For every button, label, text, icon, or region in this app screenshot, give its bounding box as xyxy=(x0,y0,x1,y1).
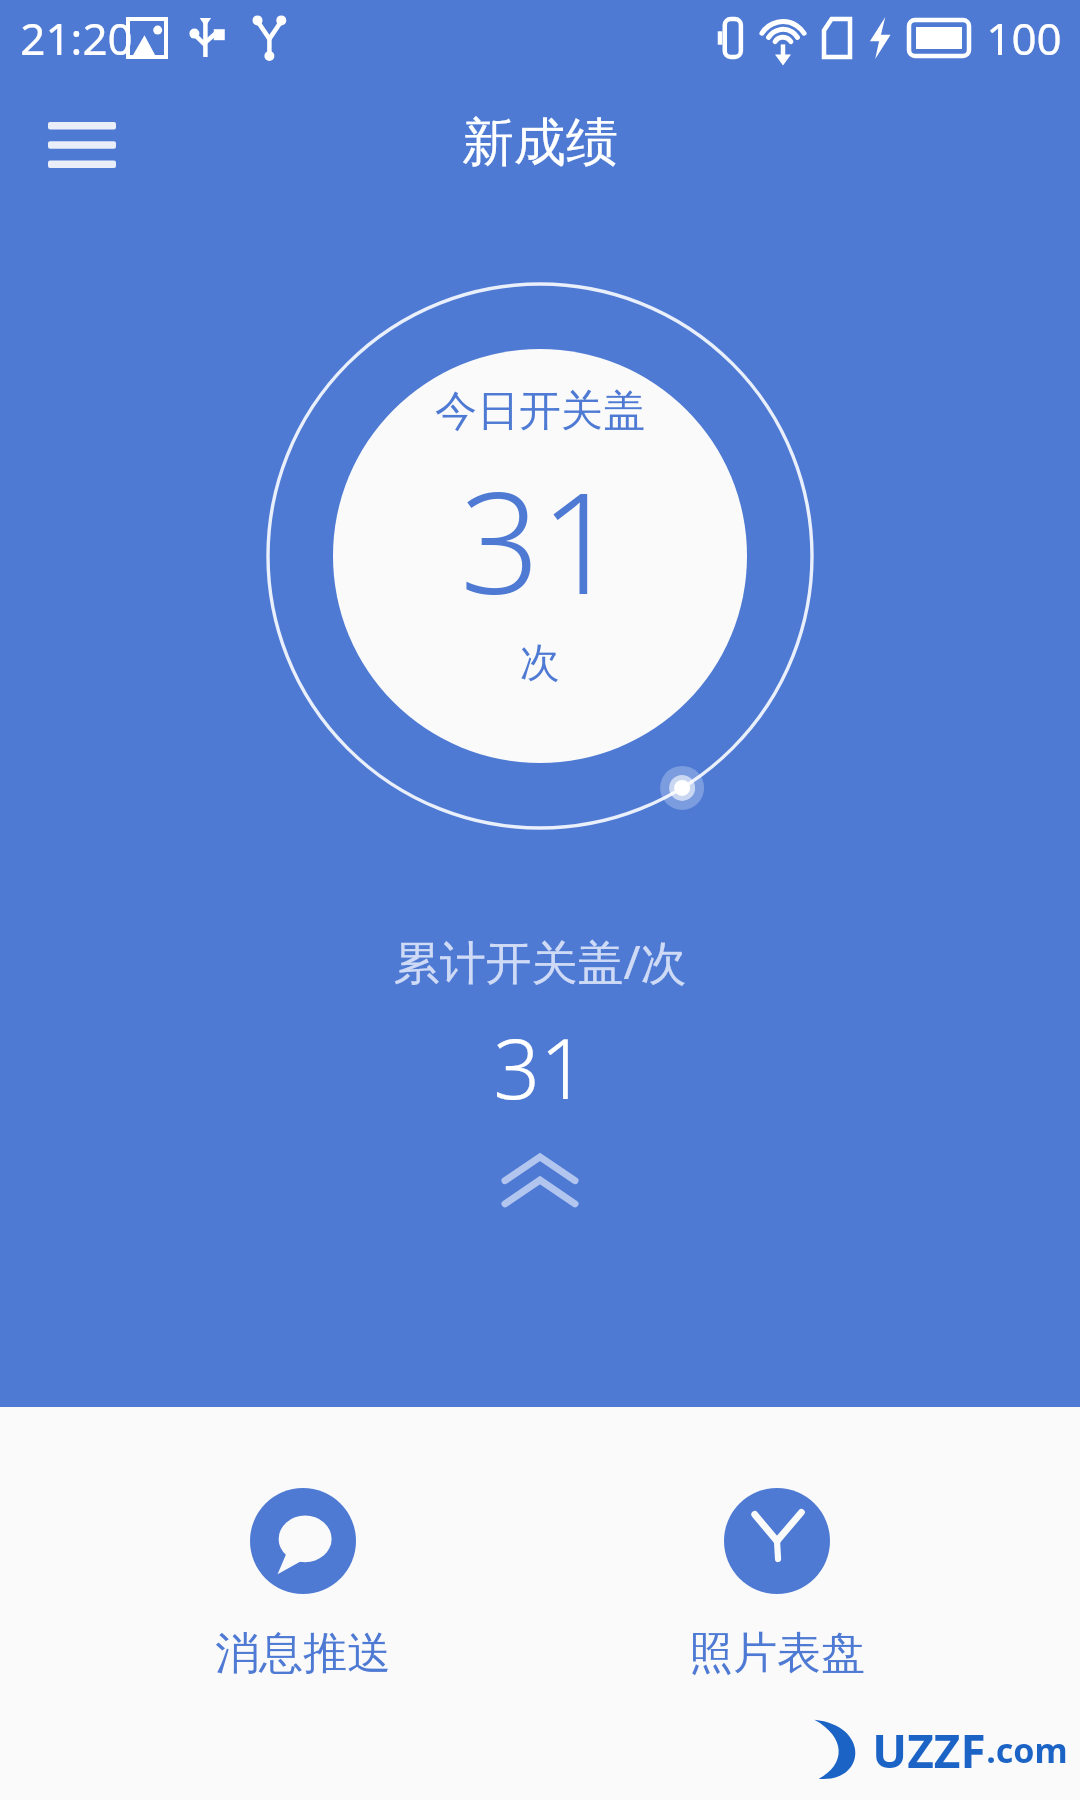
other: Message push xyxy=(250,1488,356,1594)
staticText: 次 xyxy=(520,637,560,687)
staticText: UZZF xyxy=(872,1719,986,1782)
staticText: 21:20 xyxy=(20,8,133,68)
staticText: 31 xyxy=(460,444,620,635)
staticText: 累计开关盖/次 xyxy=(393,930,687,993)
staticText: 新成绩 xyxy=(462,110,618,176)
button[interactable]: Menu xyxy=(30,110,134,180)
button[interactable]: Expand details xyxy=(480,1141,600,1225)
other: Photo watch face xyxy=(724,1488,830,1594)
staticText: 100 xyxy=(986,8,1062,68)
staticText: 消息推送 xyxy=(215,1626,391,1681)
staticText: .com xyxy=(986,1727,1068,1773)
staticText: 照片表盘 xyxy=(689,1626,865,1681)
staticText: 今日开关盖 xyxy=(435,385,645,438)
button[interactable]: Message push xyxy=(133,1482,473,1687)
staticText: 31 xyxy=(493,1011,587,1123)
button[interactable]: Photo watch face xyxy=(607,1482,947,1687)
